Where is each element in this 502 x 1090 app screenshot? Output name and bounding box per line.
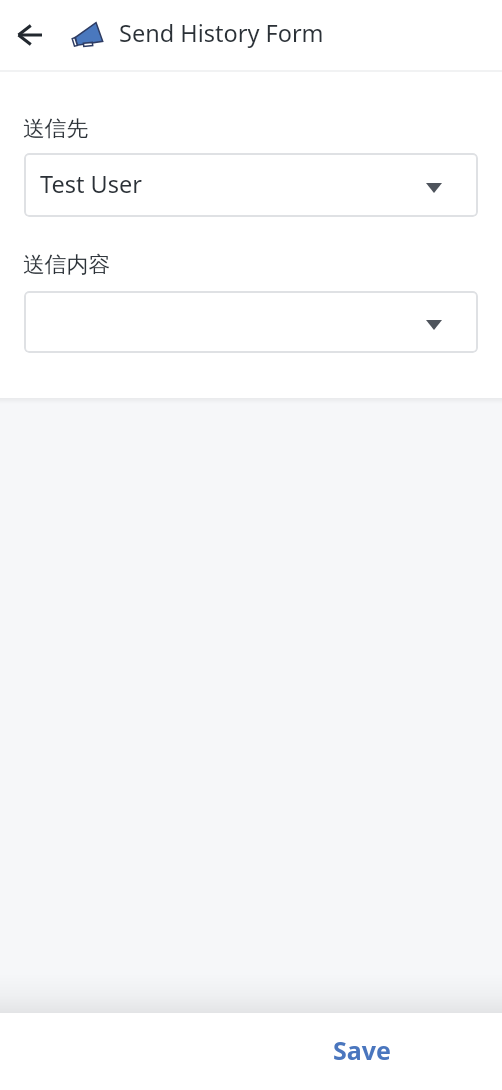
button[interactable]: Save <box>317 1024 407 1076</box>
staticText: Send History Form <box>119 17 324 49</box>
other: Announcements <box>70 20 104 48</box>
button[interactable]: Select <box>24 291 478 353</box>
button[interactable]: Navigate back <box>5 11 53 59</box>
staticText: 送信先 <box>23 115 89 142</box>
button[interactable]: Test User <box>24 153 478 217</box>
staticText: 送信内容 <box>23 251 111 278</box>
staticText: Test User <box>40 168 142 200</box>
staticText: Save <box>333 1033 391 1067</box>
